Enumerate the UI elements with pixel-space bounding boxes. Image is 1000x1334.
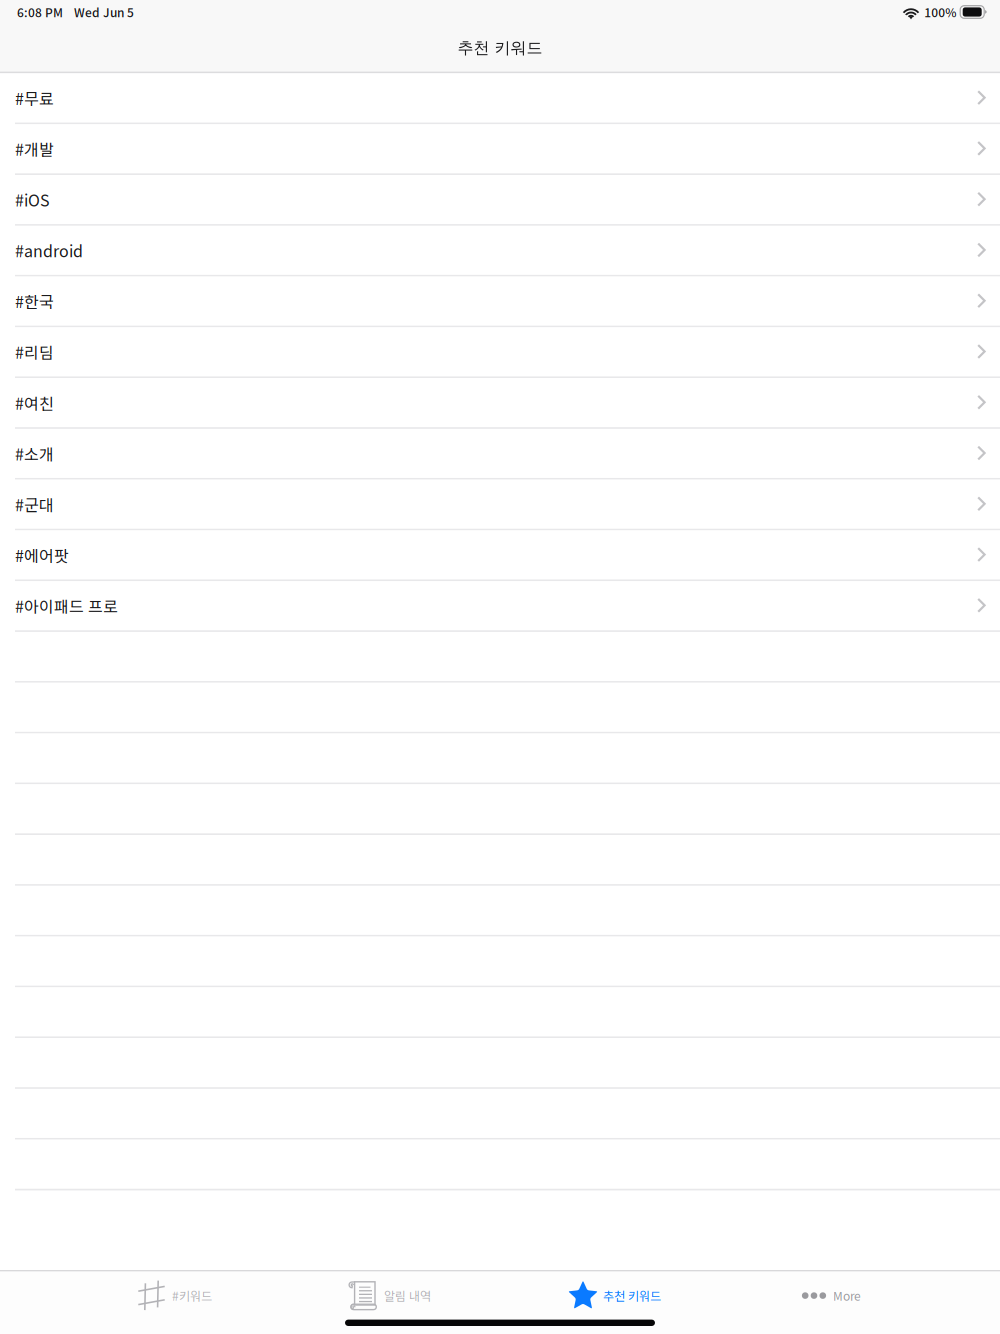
button[interactable]: #개발 (0, 124, 1000, 175)
button[interactable]: #에어팟 (0, 530, 1000, 581)
staticText: #한국 (15, 289, 54, 313)
staticText: 추천 키워드 (457, 38, 542, 58)
button[interactable]: #여친 (0, 378, 1000, 429)
staticText: 6:08 PM (17, 3, 63, 21)
button[interactable]: More (802, 1272, 861, 1320)
staticText: Wed Jun 5 (74, 3, 134, 21)
staticText: #개발 (15, 137, 54, 160)
staticText: 100% (924, 3, 956, 21)
staticText: 알림 내역 (384, 1287, 431, 1304)
button[interactable]: #군대 (0, 480, 1000, 530)
button[interactable]: #키워드 (138, 1272, 212, 1320)
staticText: #android (15, 239, 83, 262)
staticText: #아이패드 프로 (15, 594, 118, 617)
button[interactable]: #리딤 (0, 327, 1000, 378)
staticText: #키워드 (172, 1287, 212, 1304)
button[interactable]: #iOS (0, 175, 1000, 226)
staticText: #에어팟 (15, 543, 69, 567)
staticText: #군대 (15, 493, 54, 516)
button[interactable]: 알림 내역 (349, 1272, 431, 1320)
button[interactable]: 추천 키워드 (568, 1272, 661, 1320)
staticText: More (833, 1287, 861, 1304)
button[interactable]: #한국 (0, 277, 1000, 327)
staticText: #리딤 (15, 340, 54, 363)
button[interactable]: #무료 (0, 73, 1000, 124)
staticText: #iOS (15, 188, 50, 211)
staticText: 추천 키워드 (603, 1287, 661, 1304)
staticText: #무료 (15, 86, 54, 110)
button[interactable]: #아이패드 프로 (0, 581, 1000, 632)
button[interactable]: #소개 (0, 429, 1000, 480)
button[interactable]: #android (0, 226, 1000, 277)
staticText: #소개 (15, 442, 54, 465)
staticText: #여친 (15, 391, 54, 414)
